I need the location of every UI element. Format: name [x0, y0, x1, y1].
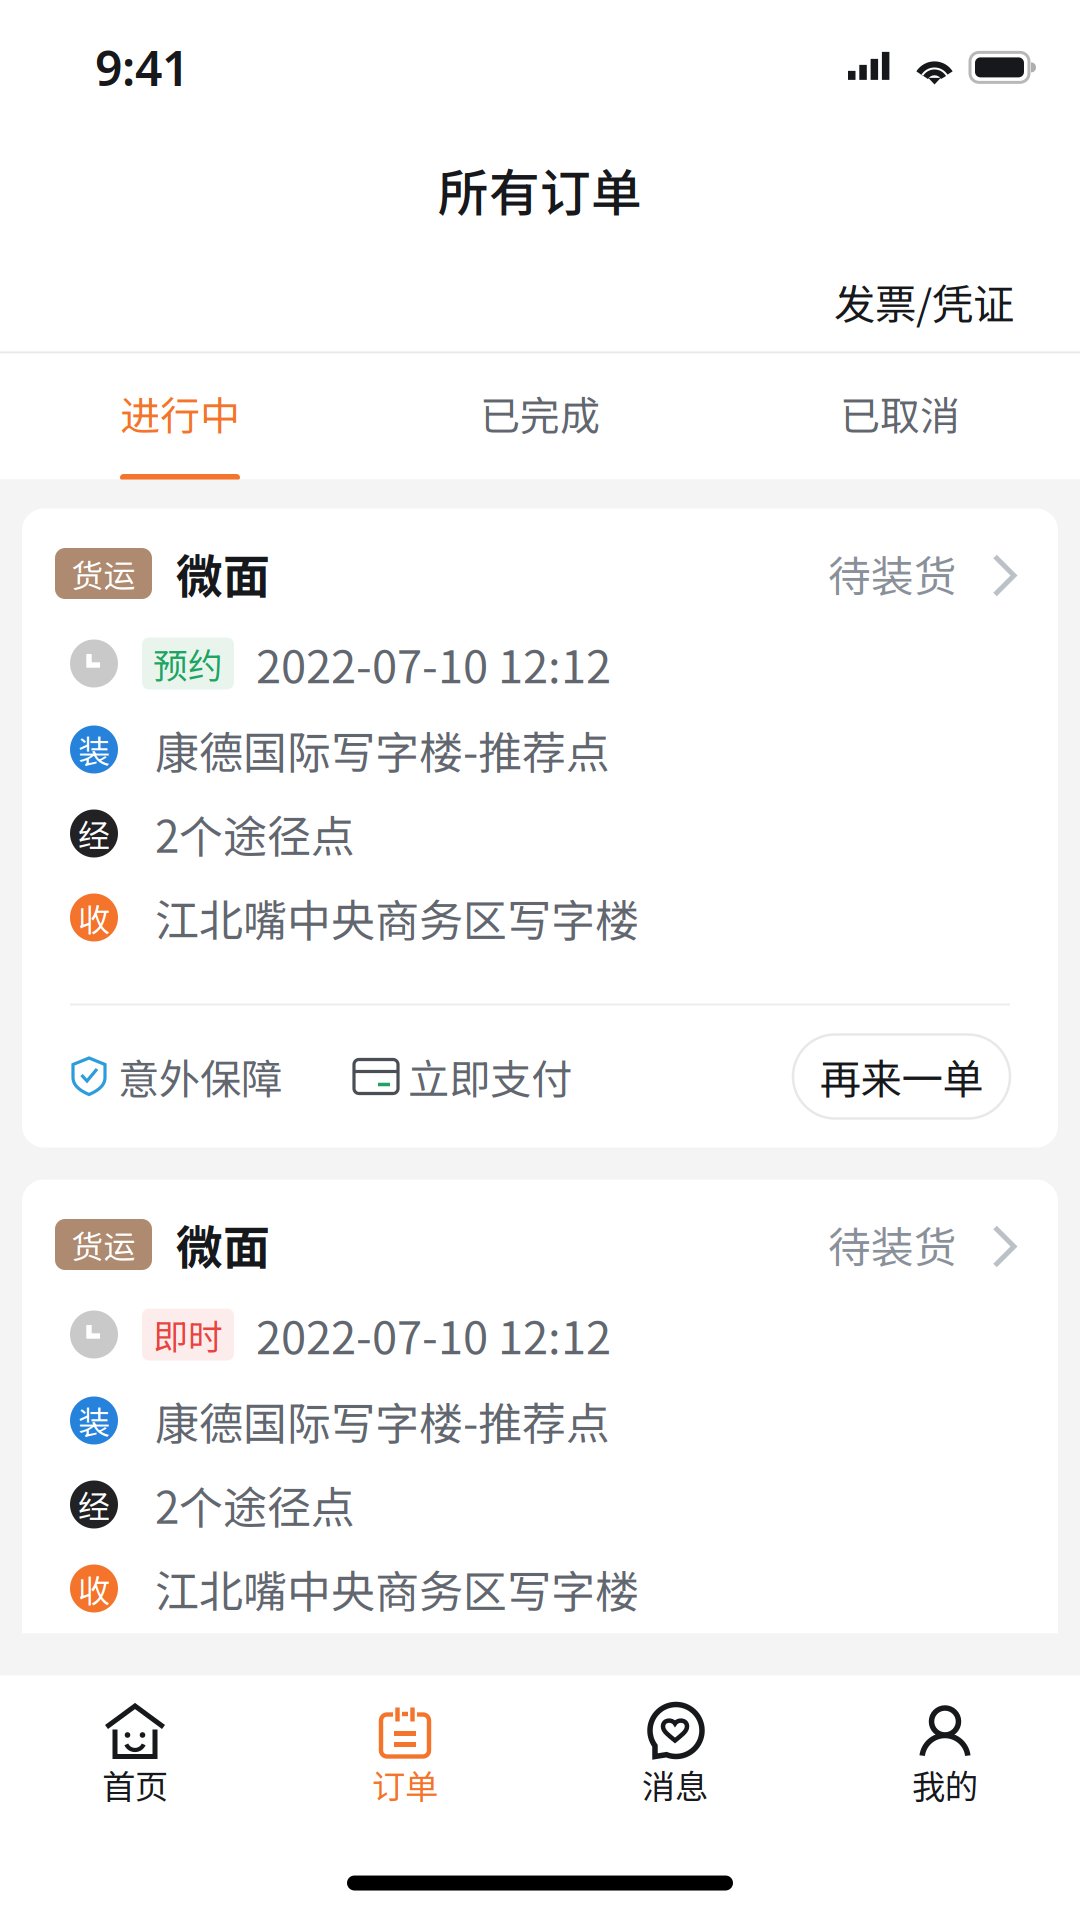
staticText: 订单	[372, 1760, 438, 1808]
button[interactable]: 立即支付	[354, 1013, 572, 1139]
staticText: 货运	[71, 1221, 135, 1268]
staticText: 9:41	[95, 35, 189, 99]
staticText: 立即支付	[408, 1047, 572, 1106]
staticText: 康德国际写字楼-推荐点	[155, 1389, 610, 1452]
staticText: 待装货	[828, 1214, 957, 1275]
button[interactable]: 意外保障	[70, 1684, 282, 1810]
button[interactable]: 意外保障	[70, 1013, 282, 1139]
staticText: 已完成	[480, 384, 600, 442]
staticText: 微面	[176, 540, 270, 607]
staticText: 意外保障	[118, 1047, 282, 1106]
staticText: 已取消	[840, 384, 960, 442]
staticText: 发票/凭证	[834, 272, 1014, 331]
button[interactable]: 我的	[810, 1702, 1080, 1808]
staticText: 意外保障	[118, 1718, 282, 1777]
staticText: 所有订单	[438, 153, 642, 226]
button[interactable]: 再来一单	[793, 1034, 1010, 1118]
staticText: 2个途径点	[155, 1473, 355, 1536]
staticText: 立即支付	[408, 1718, 572, 1777]
staticText: 2个途径点	[155, 802, 355, 865]
staticText: 微面	[176, 1211, 270, 1278]
staticText: 待装货	[828, 543, 957, 604]
staticText: 消息	[642, 1760, 708, 1808]
button[interactable]: 已取消	[720, 384, 1080, 481]
button[interactable]: 已完成	[360, 384, 720, 481]
staticText: 预约	[153, 638, 223, 689]
staticText: 江北嘴中央商务区写字楼	[155, 886, 639, 949]
button[interactable]: 发票/凭证	[834, 266, 1014, 337]
staticText: 装	[78, 726, 110, 773]
staticText: 收	[78, 1565, 110, 1612]
staticText: 再来一单	[819, 1718, 983, 1777]
button[interactable]: 订单	[270, 1702, 540, 1808]
staticText: 装	[78, 1397, 110, 1444]
staticText: 收	[78, 894, 110, 941]
staticText: 货运	[71, 550, 135, 597]
staticText: 2022-07-10 12:12	[256, 631, 611, 696]
button[interactable]: 再来一单	[793, 1705, 1010, 1789]
button[interactable]: 立即支付	[354, 1684, 572, 1810]
staticText: 我的	[912, 1760, 978, 1808]
staticText: 再来一单	[819, 1047, 983, 1106]
staticText: 江北嘴中央商务区写字楼	[155, 1557, 639, 1620]
button[interactable]: 首页	[0, 1702, 270, 1808]
button[interactable]: 消息	[540, 1702, 810, 1808]
button[interactable]: 进行中	[0, 384, 360, 481]
button[interactable]: 货运	[70, 1179, 1010, 1280]
staticText: 2022-07-10 12:12	[256, 1302, 611, 1367]
button[interactable]: 货运	[70, 508, 1010, 609]
staticText: 经	[78, 1481, 110, 1528]
staticText: 经	[78, 810, 110, 857]
staticText: 康德国际写字楼-推荐点	[155, 718, 610, 781]
staticText: 首页	[102, 1760, 168, 1808]
staticText: 进行中	[120, 384, 240, 442]
staticText: 即时	[153, 1309, 223, 1360]
